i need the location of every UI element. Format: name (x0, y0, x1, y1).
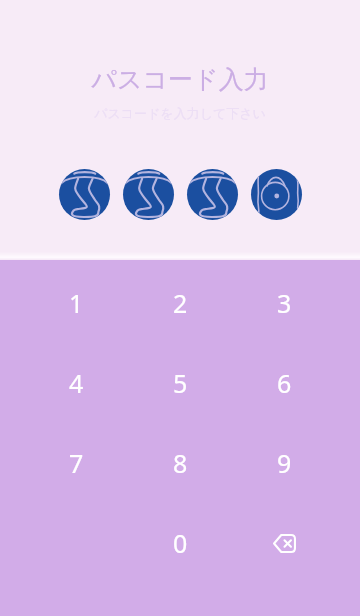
other: Backspace (273, 534, 296, 553)
button[interactable]: 3 (232, 263, 336, 343)
button[interactable]: 0 (128, 503, 232, 583)
staticText: 3 (277, 286, 292, 320)
button[interactable]: 2 (128, 263, 232, 343)
staticText: 9 (277, 446, 292, 480)
button[interactable]: 9 (232, 423, 336, 503)
button[interactable]: 5 (128, 343, 232, 423)
button[interactable]: 7 (24, 423, 128, 503)
button[interactable]: Backspace (232, 503, 336, 583)
staticText: 1 (69, 286, 84, 320)
button[interactable]: 6 (232, 343, 336, 423)
button[interactable]: 4 (24, 343, 128, 423)
staticText: パスコードを入力して下さい (94, 105, 266, 121)
staticText: 5 (173, 366, 188, 400)
button[interactable]: 8 (128, 423, 232, 503)
staticText: 7 (69, 446, 84, 480)
staticText: パスコード入力 (91, 64, 269, 95)
staticText: 8 (173, 446, 188, 480)
staticText: 6 (277, 366, 292, 400)
staticText: 4 (69, 366, 84, 400)
button[interactable]: 1 (24, 263, 128, 343)
staticText: 2 (173, 286, 188, 320)
staticText: 0 (173, 526, 188, 560)
